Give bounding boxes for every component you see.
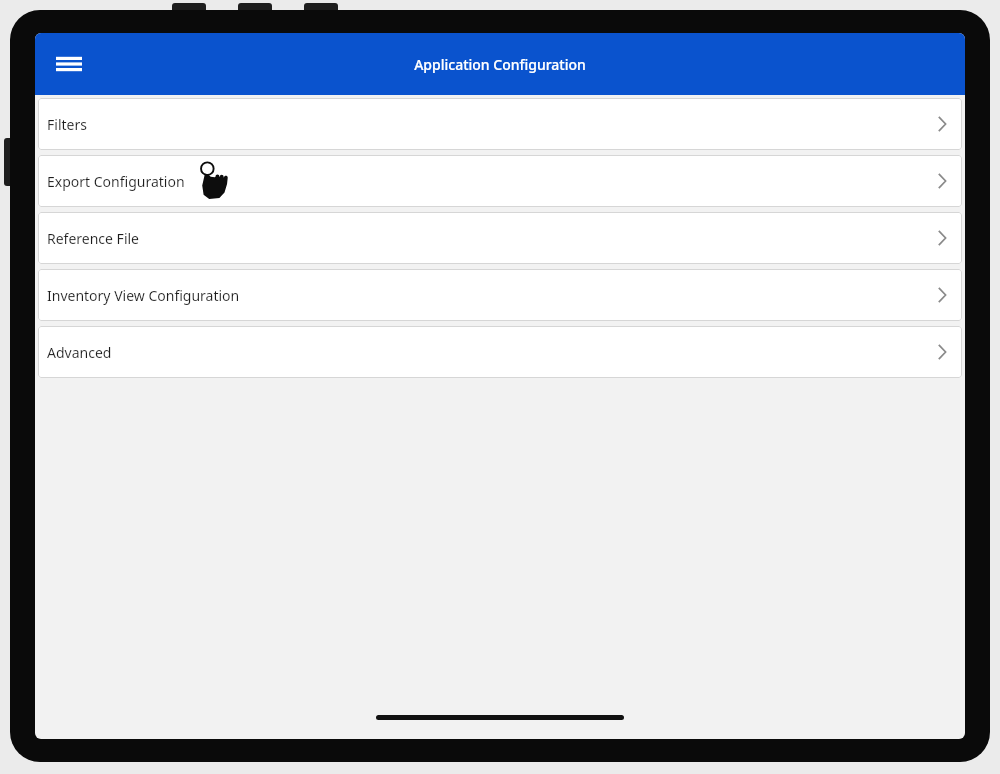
staticText: Application Configuration [414,55,586,74]
staticText: Filters [47,115,87,134]
button[interactable]: Reference File [38,212,962,264]
staticText: Advanced [47,343,112,362]
button[interactable]: Export Configuration [38,155,962,207]
staticText: Export Configuration [47,172,185,191]
staticText: Reference File [47,229,140,248]
button[interactable]: Open navigation menu [45,40,93,88]
button[interactable]: Filters [38,98,962,150]
button[interactable]: Advanced [38,326,962,378]
staticText: Inventory View Configuration [47,286,240,305]
button[interactable]: Inventory View Configuration [38,269,962,321]
